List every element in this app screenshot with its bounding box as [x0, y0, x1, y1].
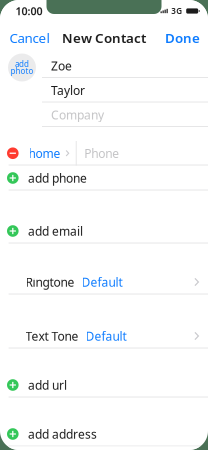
- staticText: Default: [85, 328, 126, 344]
- button[interactable]: Done: [157, 27, 208, 49]
- button[interactable]: Ringtone: [0, 269, 208, 294]
- staticText: 3G: [171, 6, 182, 16]
- staticText: add: [15, 59, 29, 69]
- button[interactable]: add url: [0, 372, 208, 397]
- staticText: Phone: [84, 145, 119, 161]
- staticText: Taylor: [51, 82, 85, 98]
- staticText: add address: [28, 426, 97, 442]
- staticText: photo: [10, 66, 33, 76]
- button[interactable]: Cancel: [0, 27, 57, 49]
- staticText: Text Tone: [25, 328, 78, 344]
- button[interactable]: add email: [0, 218, 208, 243]
- button[interactable]: add: [8, 53, 36, 81]
- button[interactable]: Text Tone: [0, 323, 208, 348]
- staticText: 10:00: [15, 4, 42, 18]
- staticText: add email: [28, 223, 83, 239]
- button[interactable]: add phone: [0, 165, 208, 190]
- button[interactable]: add address: [0, 421, 208, 446]
- staticText: home: [29, 145, 61, 161]
- button[interactable]: home: [0, 141, 69, 165]
- staticText: Done: [165, 29, 200, 47]
- staticText: Default: [81, 274, 122, 290]
- staticText: Company: [51, 107, 104, 123]
- staticText: add phone: [28, 170, 87, 186]
- staticText: add url: [28, 377, 67, 393]
- staticText: Zoe: [51, 58, 72, 74]
- staticText: Cancel: [9, 29, 49, 47]
- staticText: Ringtone: [25, 274, 74, 290]
- staticText: New Contact: [62, 29, 146, 47]
